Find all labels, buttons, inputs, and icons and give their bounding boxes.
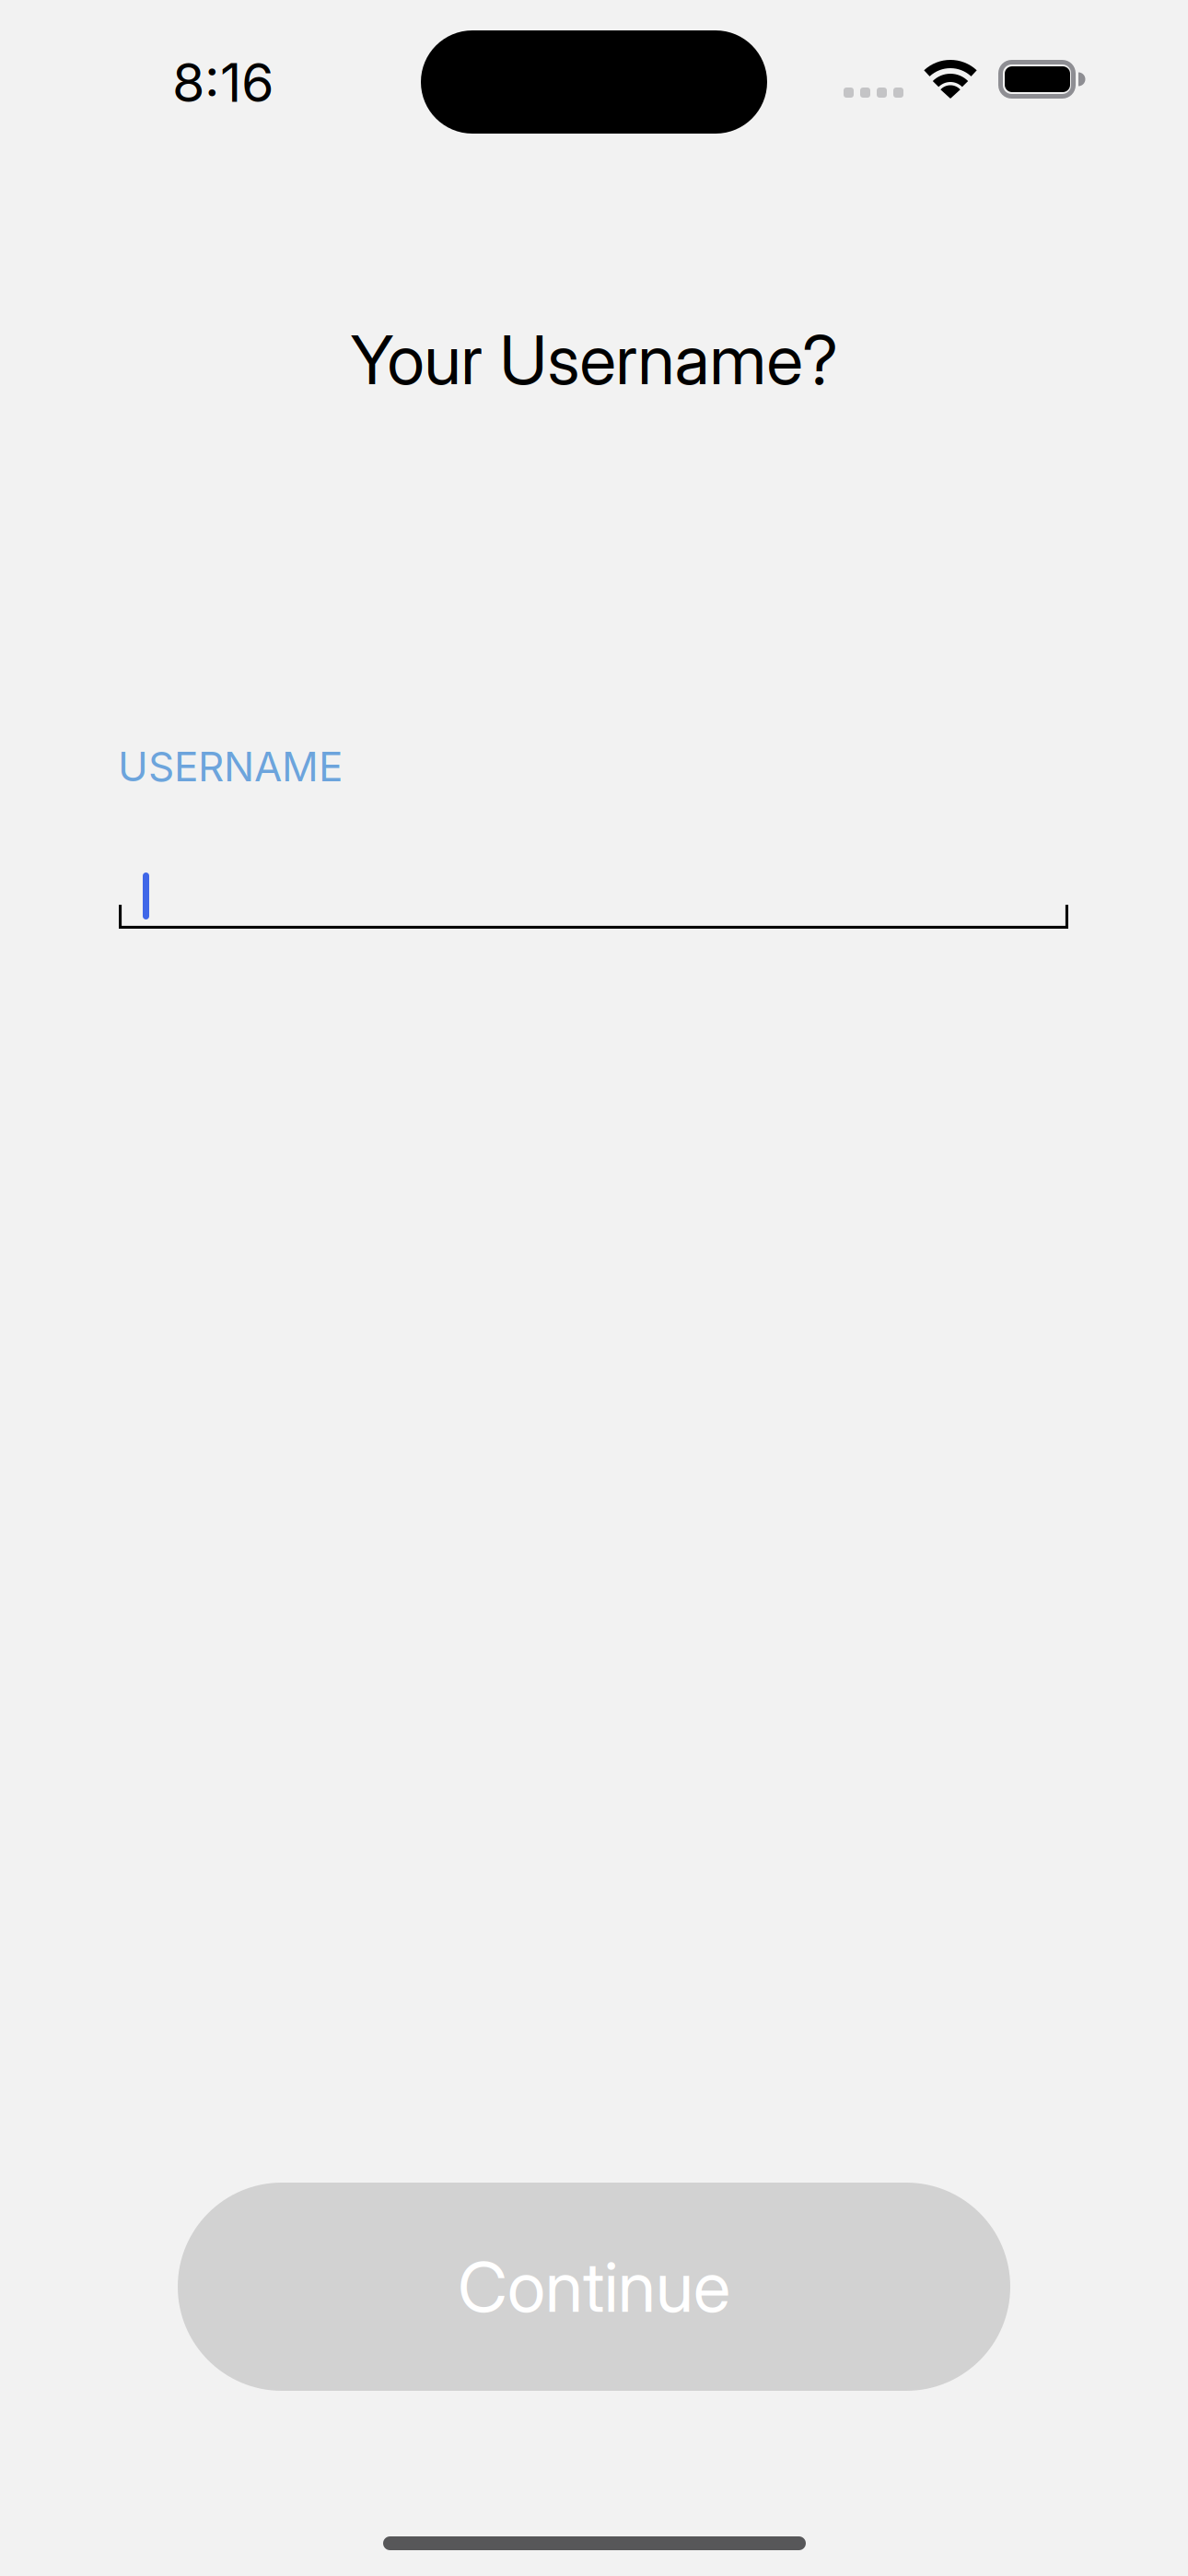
staticText: Your Username? bbox=[350, 319, 838, 392]
staticText: USERNAME bbox=[118, 742, 343, 791]
staticText: 8:16 bbox=[172, 51, 274, 102]
button[interactable]: Username bbox=[119, 737, 1068, 929]
staticText: Continue bbox=[458, 2245, 730, 2328]
button[interactable]: Continue bbox=[178, 2183, 1010, 2391]
